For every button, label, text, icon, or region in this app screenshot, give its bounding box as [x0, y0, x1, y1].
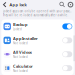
staticText: Calculator — [13, 63, 33, 69]
button[interactable]: Backup — [1, 19, 74, 33]
staticText: App lock — [9, 2, 26, 7]
staticText: Locked — [13, 27, 22, 31]
staticText: All Videos — [13, 50, 32, 55]
button[interactable]: Back — [1, 0, 8, 9]
button[interactable]: All Videos — [1, 47, 74, 61]
staticText: Not locked — [13, 69, 28, 73]
button[interactable]: Calculator — [1, 61, 74, 75]
staticText: Not locked — [13, 41, 28, 45]
staticText: They will be re-locked automatically aft… — [3, 14, 69, 17]
staticText: Backup — [13, 22, 28, 27]
staticText: Locked apps can only be opened with your… — [3, 9, 72, 13]
staticText: Not locked — [13, 55, 28, 59]
button[interactable]: AppInstaller — [1, 33, 74, 47]
staticText: AppInstaller — [13, 36, 38, 41]
button[interactable]: Search — [59, 1, 66, 8]
button[interactable]: Settings — [67, 1, 74, 8]
